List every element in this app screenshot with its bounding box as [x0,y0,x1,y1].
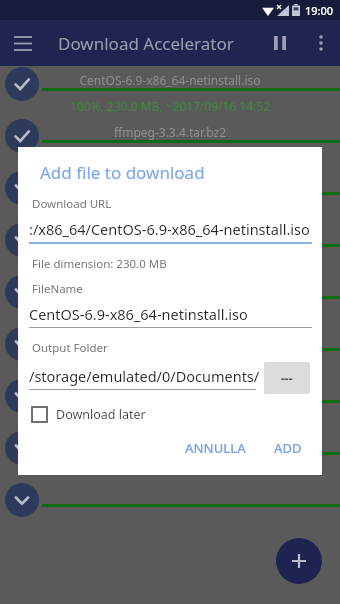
button[interactable]: ANNULLA [177,433,254,463]
staticText: Download later [56,406,146,423]
staticText: Download Accelerator [58,32,258,55]
staticText: 100%, 230.0 MB, ~2017/09/16 14:52 [0,98,340,114]
staticText: Add file to download [40,161,205,184]
button[interactable]: Pause all [258,21,302,65]
staticText: ANNULLA [185,439,246,457]
button[interactable]: Choose folder [264,362,310,394]
button[interactable]: Add download [276,538,322,584]
staticText: ADD [274,439,302,457]
button[interactable]: Open navigation menu [0,20,46,66]
button[interactable] [0,379,340,431]
button[interactable]: CentOS-6.9-x86_64-netinstall.iso [0,67,340,119]
button[interactable]: Download later [32,406,146,423]
staticText: --- [281,370,293,386]
button[interactable]: ffmpeg-3.3.4.tar.bz2 [0,119,340,171]
staticText: 19:00 [305,3,334,18]
staticText: :/x86_64/CentOS-6.9-x86_64-netinstall.is… [29,219,310,239]
button[interactable] [0,223,340,275]
button[interactable] [0,327,340,379]
button[interactable] [0,431,340,483]
button[interactable] [0,275,340,327]
button[interactable] [0,483,340,535]
button[interactable]: More options [302,24,340,62]
staticText: Output Folder [32,340,108,356]
staticText: CentOS-6.9-x86_64-netinstall.iso [29,304,248,324]
button[interactable]: ADD [266,433,310,463]
staticText: File dimension: 230.0 MB [32,256,167,272]
staticText: /storage/emulated/0/Documents/ [29,366,260,386]
staticText: Download URL [32,196,112,212]
staticText: ffmpeg-3.3.4.tar.bz2 [0,124,340,140]
staticText: FileName [32,281,83,297]
staticText: CentOS-6.9-x86_64-netinstall.iso [0,72,340,88]
button[interactable] [0,171,340,223]
